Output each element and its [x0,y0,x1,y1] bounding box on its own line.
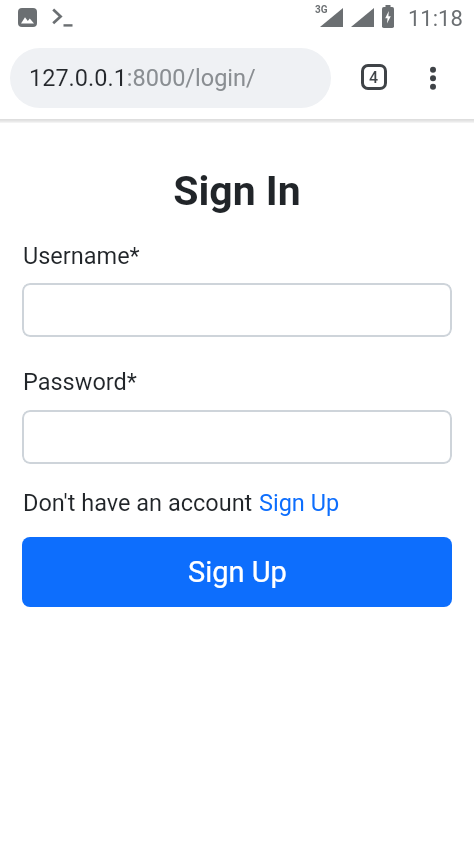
staticText: Password* [23,368,137,396]
button[interactable]: Sign Up [22,537,452,607]
button[interactable]: 127.0.0.1:8000/login/ [10,48,331,108]
staticText: Don't have an account [23,489,259,517]
button[interactable] [22,283,452,337]
staticText: Username* [23,242,140,270]
staticText: 127.0.0.1:8000/login/ [29,64,256,92]
button[interactable] [22,410,452,464]
staticText: 4 [369,68,379,87]
button[interactable]: 4 [361,64,387,90]
button[interactable]: Sign Up [259,489,340,517]
staticText: Sign Up [188,555,287,589]
staticText: 3G [315,4,328,16]
staticText: 11:18 [408,6,463,32]
button[interactable] [424,66,442,100]
staticText: Sign In [0,167,474,215]
